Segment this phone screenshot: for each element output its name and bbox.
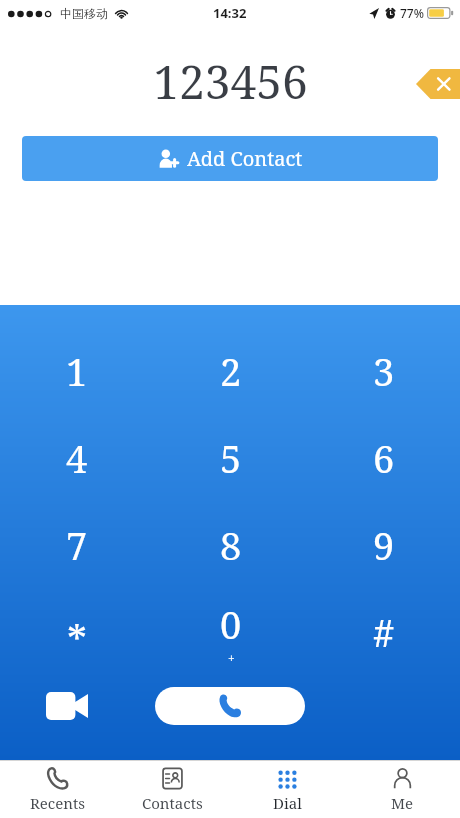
button[interactable]: Dial	[230, 761, 345, 818]
button[interactable]: 1	[0, 327, 154, 414]
button[interactable]: Add Contact	[22, 136, 438, 181]
staticText: 2	[220, 345, 242, 397]
staticText: 6	[373, 432, 395, 484]
staticText: 4	[66, 432, 88, 484]
staticText: Add Contact	[187, 145, 303, 172]
staticText: 9	[373, 519, 395, 571]
button[interactable]: 9	[307, 501, 460, 588]
staticText: Me	[391, 793, 414, 813]
button[interactable]: 5	[154, 414, 307, 501]
staticText: 14:32	[213, 4, 247, 22]
button[interactable]: 0	[154, 588, 307, 675]
button[interactable]: Contacts	[115, 761, 230, 818]
button[interactable]: *	[0, 588, 154, 675]
button[interactable]: 8	[154, 501, 307, 588]
staticText: Contacts	[142, 793, 203, 813]
button[interactable]: #	[307, 588, 460, 675]
staticText: Dial	[273, 793, 302, 813]
staticText: 8	[220, 519, 242, 571]
staticText: *	[67, 612, 87, 666]
staticText: 3	[373, 345, 395, 397]
staticText: 5	[220, 432, 242, 484]
button[interactable]: Me	[345, 761, 460, 818]
button[interactable]: 3	[307, 327, 460, 414]
button[interactable]: Delete	[416, 69, 460, 99]
staticText: Recents	[30, 793, 85, 813]
button[interactable]: Recents	[0, 761, 115, 818]
staticText: 77%	[400, 5, 424, 21]
staticText: 123456	[153, 50, 308, 113]
staticText: 0	[220, 598, 242, 650]
button[interactable]: 6	[307, 414, 460, 501]
staticText: 中国移动	[60, 6, 108, 21]
button[interactable]: Video call	[44, 686, 90, 726]
button[interactable]: 2	[154, 327, 307, 414]
staticText: 1	[66, 345, 88, 397]
button[interactable]: 7	[0, 501, 154, 588]
staticText: +	[228, 650, 235, 666]
button[interactable]: Call	[155, 687, 305, 725]
staticText: #	[373, 606, 395, 658]
button[interactable]: 4	[0, 414, 154, 501]
staticText: 7	[66, 519, 88, 571]
